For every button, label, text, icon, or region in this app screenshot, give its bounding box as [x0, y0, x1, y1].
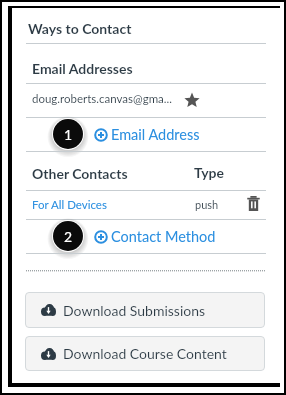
staticText: Email Addresses: [32, 60, 133, 77]
other: Default email address: [184, 92, 200, 108]
button[interactable]: [12, 84, 266, 117]
other: Delete: [247, 196, 260, 211]
staticText: Other Contacts: [32, 165, 128, 182]
button[interactable]: Download Submissions: [25, 292, 265, 328]
button[interactable]: Download Course Content: [25, 336, 265, 371]
staticText: doug.roberts.canvas@gma...: [32, 92, 172, 106]
staticText: 2: [64, 228, 73, 245]
staticText: Download Submissions: [63, 302, 206, 319]
staticText: Contact Method: [111, 228, 216, 245]
button[interactable]: [12, 191, 266, 219]
button[interactable]: Contact Method: [12, 220, 266, 253]
staticText: 1: [64, 126, 73, 143]
staticText: Email Address: [111, 126, 200, 143]
staticText: Ways to Contact: [28, 20, 132, 37]
staticText: For All Devices: [32, 198, 107, 212]
staticText: Download Course Content: [63, 345, 227, 362]
staticText: push: [195, 198, 219, 211]
staticText: Type: [194, 164, 225, 181]
button[interactable]: Email Address: [12, 118, 266, 151]
